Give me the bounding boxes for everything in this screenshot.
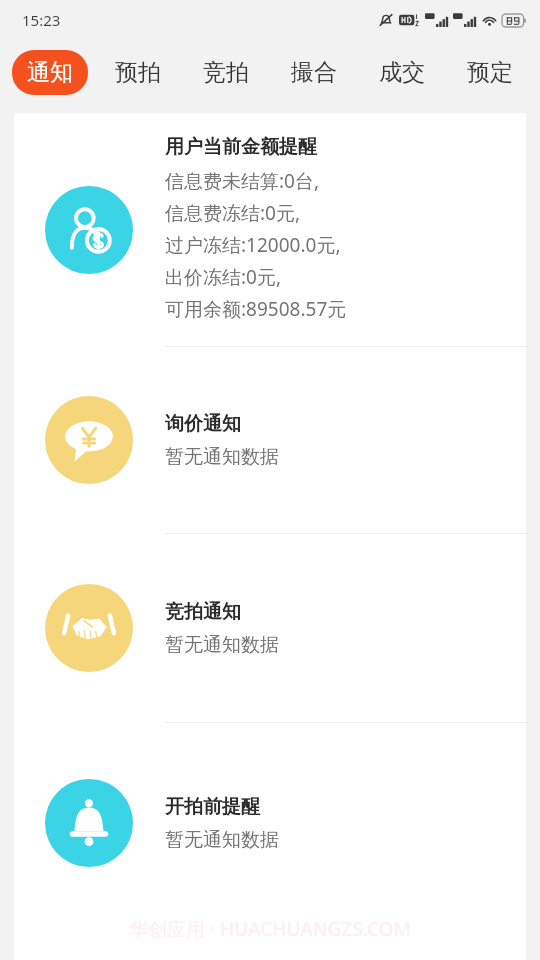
- staticText: 预定: [467, 58, 513, 87]
- other: 竞拍通知: [45, 584, 133, 672]
- staticText: 过户冻结:12000.0元,: [165, 232, 341, 258]
- button[interactable]: 询价通知: [14, 347, 526, 533]
- staticText: 用户当前金额提醒: [165, 135, 317, 159]
- staticText: 竞拍: [203, 58, 249, 87]
- staticText: 询价通知: [165, 412, 241, 436]
- button[interactable]: 预拍: [94, 40, 182, 104]
- staticText: 暂无通知数据: [165, 633, 279, 657]
- button[interactable]: 成交: [358, 40, 446, 104]
- staticText: 成交: [379, 58, 425, 87]
- button[interactable]: 竞拍: [182, 40, 270, 104]
- button[interactable]: 预定: [446, 40, 534, 104]
- staticText: 15:23: [22, 10, 61, 30]
- staticText: 暂无通知数据: [165, 445, 279, 469]
- other: 开拍前提醒: [45, 779, 133, 867]
- staticText: 信息费未结算:0台,: [165, 168, 320, 194]
- staticText: 通知: [27, 58, 73, 87]
- staticText: 暂无通知数据: [165, 828, 279, 852]
- staticText: 信息费冻结:0元,: [165, 200, 301, 226]
- staticText: 出价冻结:0元,: [165, 264, 282, 290]
- button[interactable]: 竞拍通知: [14, 534, 526, 722]
- staticText: 撮合: [291, 58, 337, 87]
- staticText: 竞拍通知: [165, 600, 241, 624]
- button[interactable]: 通知: [6, 40, 94, 104]
- button[interactable]: 撮合: [270, 40, 358, 104]
- other: 账户余额: [45, 186, 133, 274]
- staticText: 华创应用 · HUACHUANGZS.COM: [129, 916, 411, 942]
- button[interactable]: 开拍前提醒: [14, 723, 526, 923]
- staticText: 可用余额:89508.57元: [165, 296, 347, 322]
- other: 询价通知: [45, 396, 133, 484]
- staticText: 预拍: [115, 58, 161, 87]
- staticText: 开拍前提醒: [165, 795, 260, 819]
- button[interactable]: 账户余额: [14, 113, 526, 346]
